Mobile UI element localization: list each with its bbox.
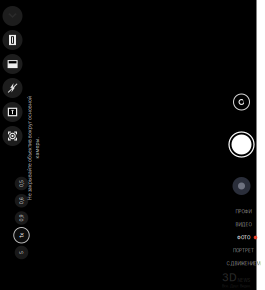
button[interactable]: Night mode	[2, 102, 22, 122]
staticText: 0,6	[18, 198, 25, 204]
staticText: 0,5	[18, 181, 25, 186]
staticText: 1x	[19, 232, 24, 238]
button[interactable]: Aspect ratio	[2, 54, 22, 74]
button[interactable]: Zoom 0,9	[13, 209, 30, 226]
staticText: ПРОФИ	[235, 209, 251, 214]
button[interactable]: Zoom 5	[13, 244, 30, 261]
button[interactable]: Photo library	[232, 177, 250, 195]
button[interactable]: More controls	[2, 6, 22, 26]
staticText: 5	[20, 250, 23, 255]
button[interactable]: Take photo	[229, 132, 254, 157]
staticText: Не закрывайте объектив вокруг основной	[0, 141, 85, 147]
button[interactable]: Live Photo	[2, 126, 22, 146]
staticText: ПОРТРЕТ	[233, 248, 254, 253]
button[interactable]: ПОРТРЕТ	[213, 245, 265, 256]
staticText: ВИДЕО	[235, 222, 251, 227]
button[interactable]: ФОТО	[213, 232, 265, 243]
button[interactable]: Cinematic	[2, 30, 22, 50]
button[interactable]: Zoom 0,6	[13, 192, 30, 209]
button[interactable]: Flash off	[2, 78, 22, 98]
staticText: С ДВИЖЕНИЕМ	[226, 261, 260, 266]
staticText: NEWS	[237, 278, 250, 283]
staticText: 3D	[222, 271, 237, 284]
staticText: камеры.	[23, 149, 44, 155]
staticText: Все. Друг. Видео.	[222, 284, 251, 288]
staticText: ФОТО	[237, 235, 250, 240]
button[interactable]: Zoom 0,5	[13, 175, 30, 192]
button[interactable]: Switch camera	[232, 93, 250, 111]
button[interactable]: С ДВИЖЕНИЕМ	[213, 258, 265, 269]
button[interactable]: ПРОФИ	[213, 206, 265, 217]
button[interactable]: Zoom 1x	[13, 227, 30, 244]
button[interactable]: ВИДЕО	[213, 219, 265, 230]
staticText: 0,9	[18, 215, 25, 221]
